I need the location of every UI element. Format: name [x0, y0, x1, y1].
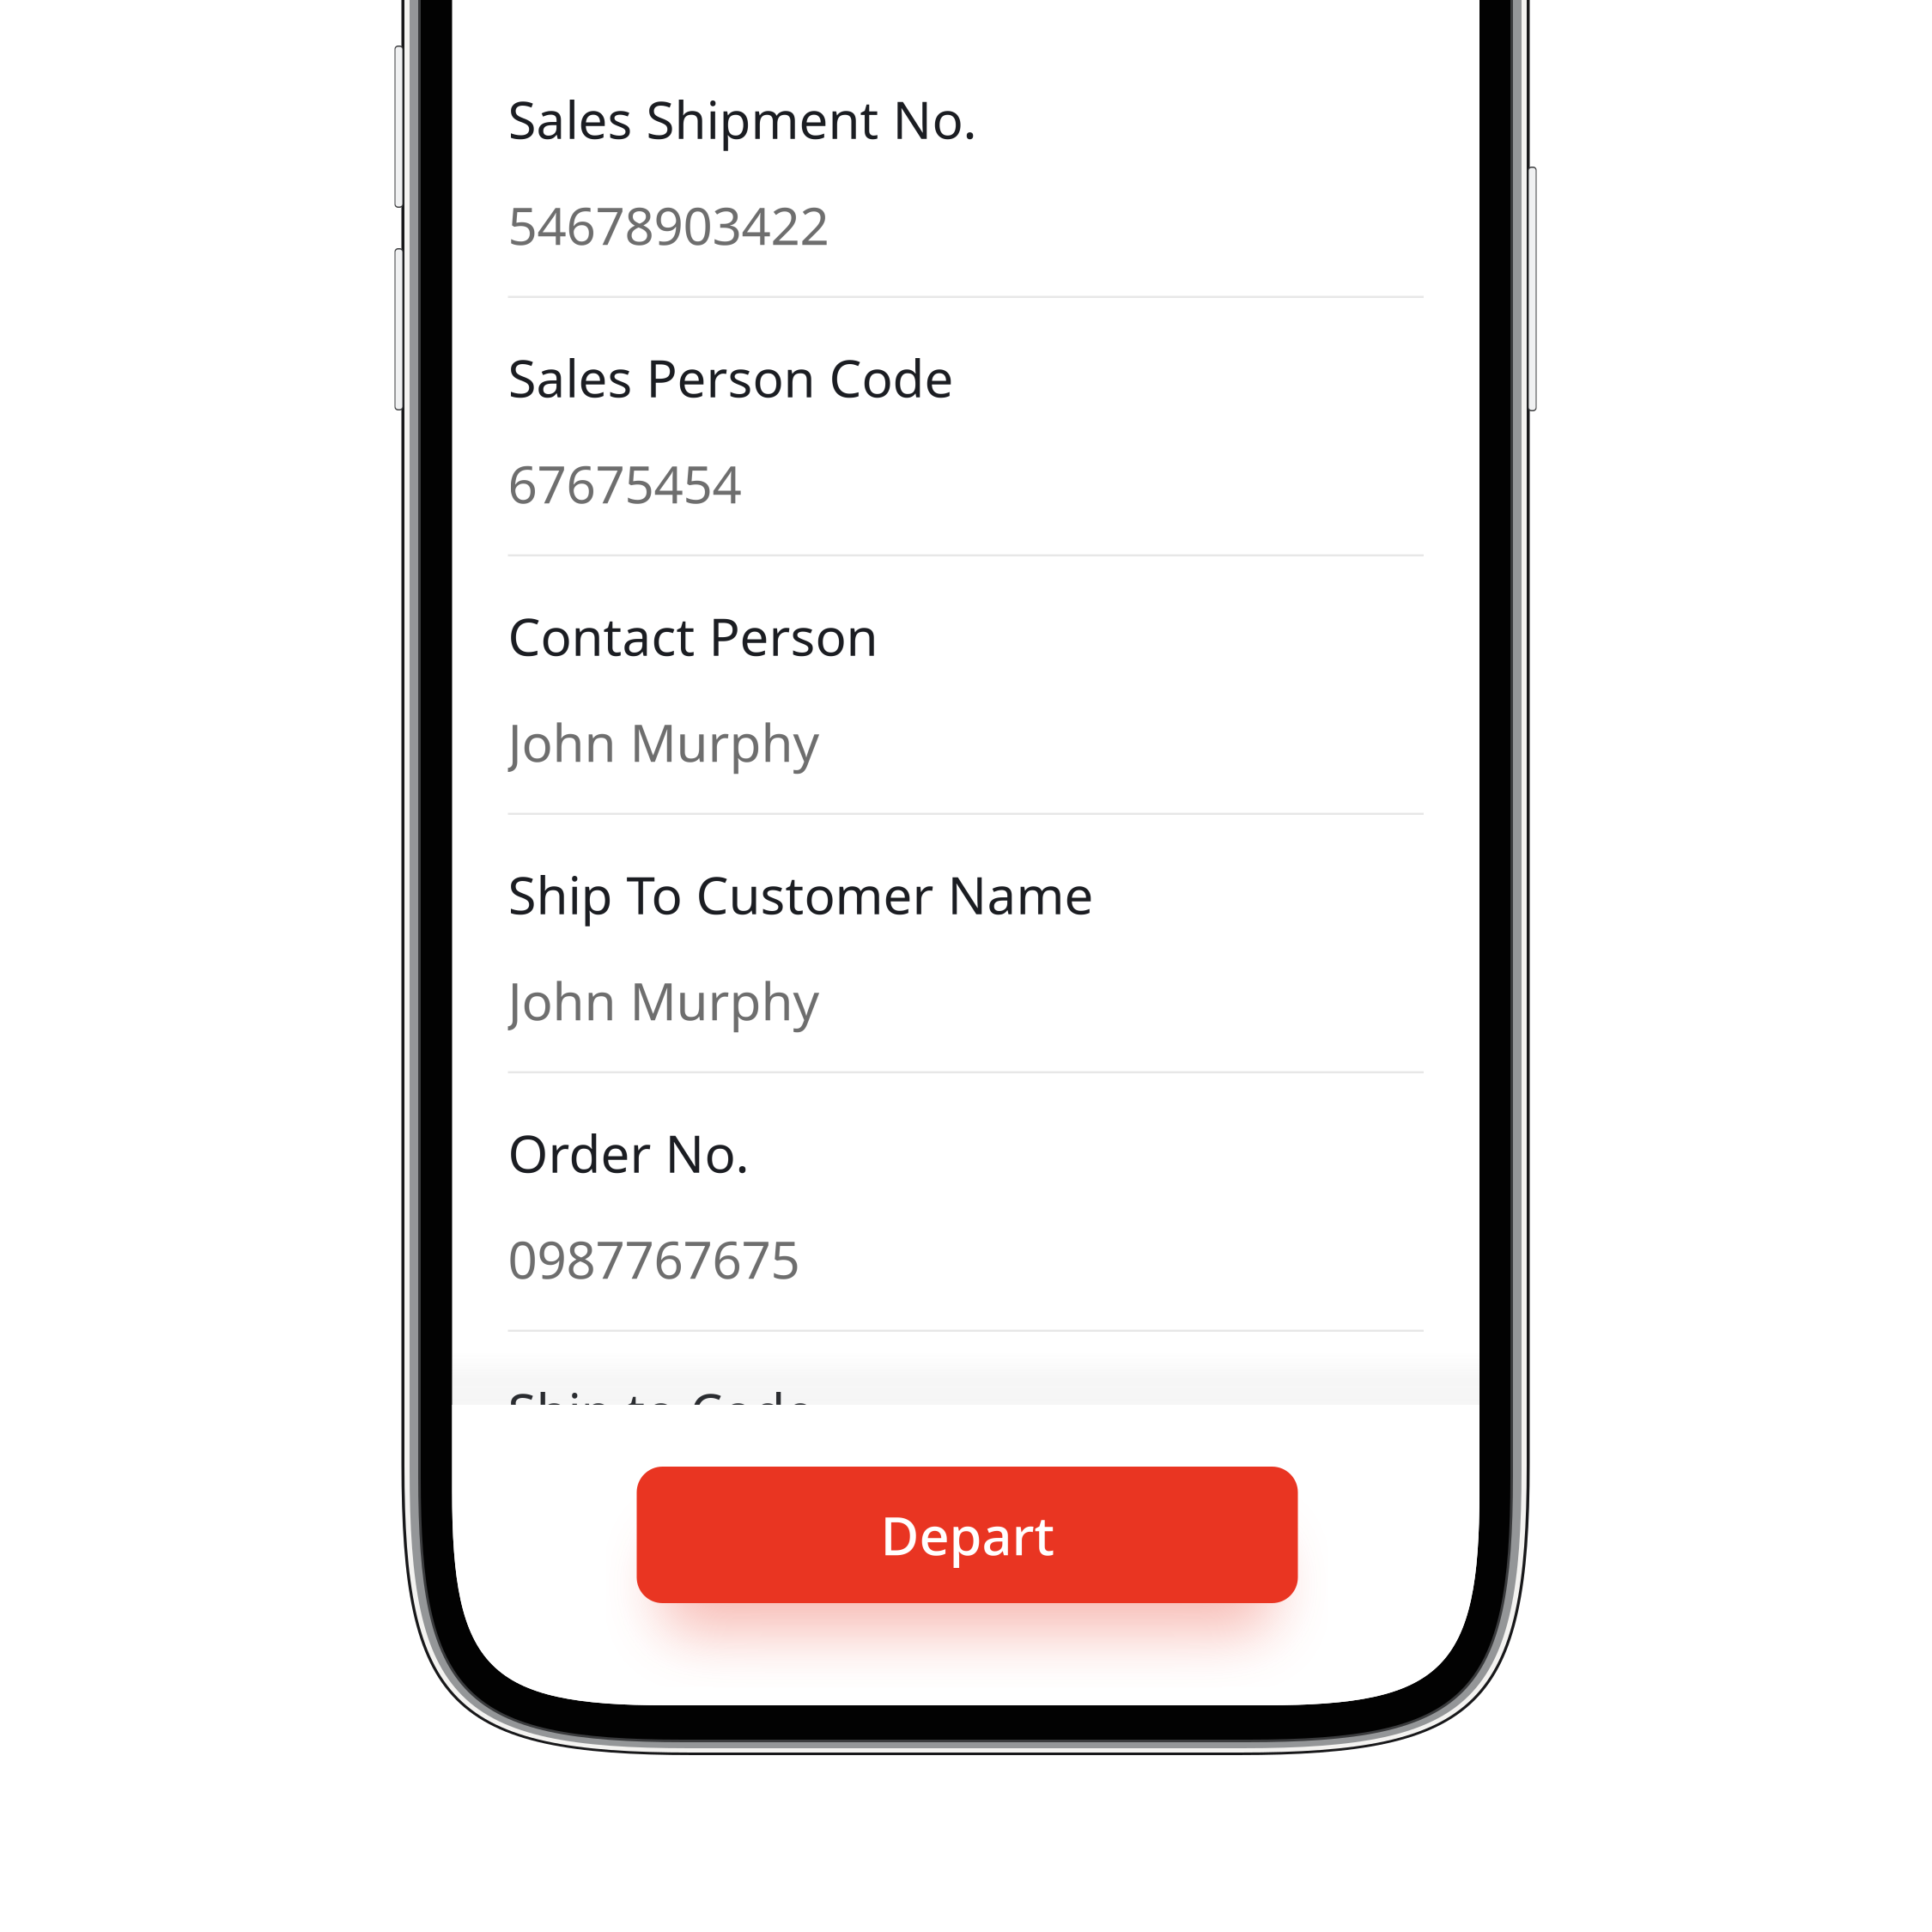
staticText: Contact Person — [508, 602, 878, 670]
staticText: Ship To Customer Name — [508, 860, 1094, 929]
staticText: JM-0045 — [508, 1483, 701, 1552]
staticText: Ship to Code — [508, 1377, 814, 1445]
staticText: John Murphy — [508, 966, 820, 1035]
staticText: Sales Shipment No. — [508, 85, 977, 153]
button[interactable]: Depart — [637, 1467, 1298, 1603]
staticText: 67675454 — [508, 449, 741, 518]
staticText: 0987767675 — [508, 1225, 800, 1293]
staticText: Order No. — [508, 1119, 749, 1187]
staticText: Sales Person Code — [508, 343, 954, 412]
staticText: 54678903422 — [508, 191, 829, 259]
staticText: John Murphy — [508, 708, 820, 776]
staticText: Depart — [881, 1500, 1054, 1570]
